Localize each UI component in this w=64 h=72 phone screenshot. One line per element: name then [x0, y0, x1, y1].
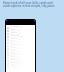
- button[interactable]: [6, 29, 35, 32]
- button[interactable]: [6, 44, 35, 47]
- button[interactable]: [6, 65, 35, 68]
- button[interactable]: [6, 62, 35, 65]
- button[interactable]: [6, 38, 35, 41]
- button[interactable]: [6, 26, 35, 29]
- button[interactable]: [6, 35, 35, 38]
- staticText: Keep track of all your bills, cards and …: [3, 1, 61, 8]
- button[interactable]: [6, 56, 35, 59]
- button[interactable]: [6, 32, 35, 35]
- button[interactable]: [6, 53, 35, 56]
- button[interactable]: [6, 59, 35, 62]
- button[interactable]: [6, 50, 35, 53]
- button[interactable]: [6, 41, 35, 44]
- button[interactable]: [6, 47, 35, 50]
